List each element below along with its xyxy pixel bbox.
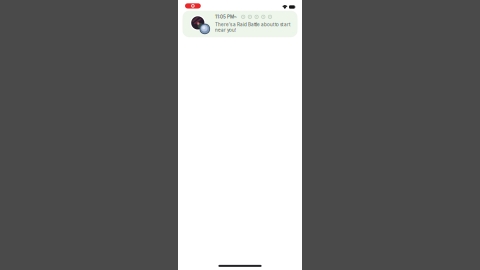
button[interactable]: 11:05 PM~ bbox=[182, 11, 297, 37]
staticText: There's a Raid Battle about to start nea… bbox=[215, 22, 290, 33]
button[interactable]: Screen recording in progress bbox=[178, 0, 204, 10]
staticText: 11:05 PM~ bbox=[215, 14, 237, 20]
